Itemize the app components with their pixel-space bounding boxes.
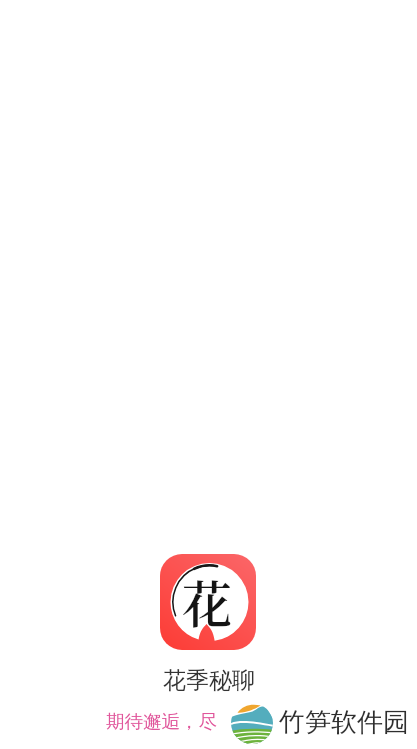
button[interactable]: 花季秘聊 app icon bbox=[160, 554, 256, 650]
staticText: 花季秘聊 bbox=[163, 666, 255, 695]
staticText: 花 bbox=[182, 565, 232, 637]
staticText: 竹笋软件园 bbox=[279, 706, 409, 739]
staticText: 期待邂逅，尽 bbox=[106, 710, 217, 733]
